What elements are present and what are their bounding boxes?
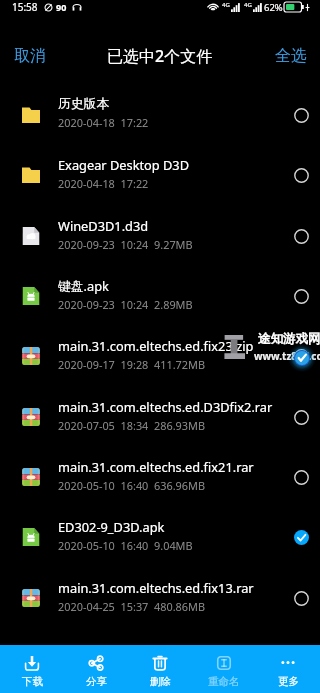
staticText: ED302-9_D3D.apk [58, 518, 165, 535]
staticText: 下载 [22, 675, 43, 688]
button[interactable]: 下载 [0, 645, 64, 693]
button[interactable]: Select [288, 524, 314, 550]
button[interactable]: Select [288, 283, 314, 309]
button[interactable]: 分享 [64, 645, 128, 693]
staticText: 2020-04-18 17:22 [58, 115, 149, 130]
button[interactable]: Select [288, 404, 314, 430]
button[interactable]: Select [288, 102, 314, 128]
staticText: 取消 [14, 46, 46, 66]
staticText: 2020-04-25 15:37 480.86MB [58, 599, 206, 614]
button[interactable]: 键盘.apk [0, 266, 320, 326]
staticText: 已选中2个文件 [107, 45, 213, 67]
staticText: 2020-04-18 17:22 [58, 176, 149, 191]
button[interactable]: main.31.com.eltechs.ed.D3Dfix2.rar [0, 387, 320, 447]
staticText: 2020-09-17 19:28 411.72MB [58, 357, 206, 372]
staticText: 62% [264, 1, 283, 14]
staticText: 全选 [275, 46, 307, 66]
button[interactable]: 取消 [0, 38, 60, 74]
staticText: 15:58 [12, 0, 38, 14]
button[interactable]: WineD3D1.d3d [0, 206, 320, 266]
staticText: 键盘.apk [58, 277, 109, 294]
staticText: main.31.com.eltechs.ed.fix21.rar [58, 458, 254, 475]
button[interactable]: Select [288, 585, 314, 611]
staticText: 2020-09-23 10:24 9.27MB [58, 237, 193, 252]
staticText: 2020-05-10 16:40 636.96MB [58, 478, 206, 493]
staticText: 途知游戏网 [258, 331, 320, 347]
staticText: main.31.com.eltechs.ed.D3Dfix2.rar [58, 398, 273, 415]
button[interactable]: Select [288, 464, 314, 490]
button[interactable]: 历史版本 [0, 85, 320, 145]
button[interactable]: 全选 [262, 38, 320, 74]
staticText: 2020-07-05 18:34 286.93MB [58, 418, 206, 433]
staticText: main.31.com.eltechs.ed.fix23.zip [58, 337, 254, 354]
staticText: main.31.com.eltechs.ed.fix13.rar [58, 579, 254, 596]
button[interactable]: 重命名 [192, 645, 256, 693]
staticText: 2020-09-23 10:24 2.89MB [58, 297, 193, 312]
staticText: 2020-05-10 16:40 9.04MB [58, 538, 193, 553]
button[interactable]: Select [288, 343, 314, 369]
button[interactable]: main.31.com.eltechs.ed.fix21.rar [0, 447, 320, 507]
button[interactable]: ED302-9_D3D.apk [0, 507, 320, 567]
button[interactable]: Select [288, 223, 314, 249]
staticText: Exagear Desktop D3D [58, 156, 190, 173]
staticText: 删除 [150, 675, 171, 688]
staticText: 90 [56, 1, 67, 13]
button[interactable]: main.31.com.eltechs.ed.fix23.zip [0, 326, 320, 386]
staticText: 更多 [278, 675, 299, 688]
staticText: 4G [222, 1, 230, 9]
staticText: 4G [244, 1, 252, 9]
staticText: 分享 [86, 675, 107, 688]
staticText: 重命名 [208, 675, 240, 688]
button[interactable]: main.31.com.eltechs.ed.fix13.rar [0, 568, 320, 628]
staticText: WineD3D1.d3d [58, 217, 149, 234]
staticText: 历史版本 [58, 96, 110, 112]
staticText: www.tz887.com [254, 349, 320, 363]
button[interactable]: Exagear Desktop D3D [0, 145, 320, 205]
button[interactable]: Select [288, 162, 314, 188]
button[interactable]: 删除 [128, 645, 192, 693]
button[interactable]: 更多 [256, 645, 320, 693]
